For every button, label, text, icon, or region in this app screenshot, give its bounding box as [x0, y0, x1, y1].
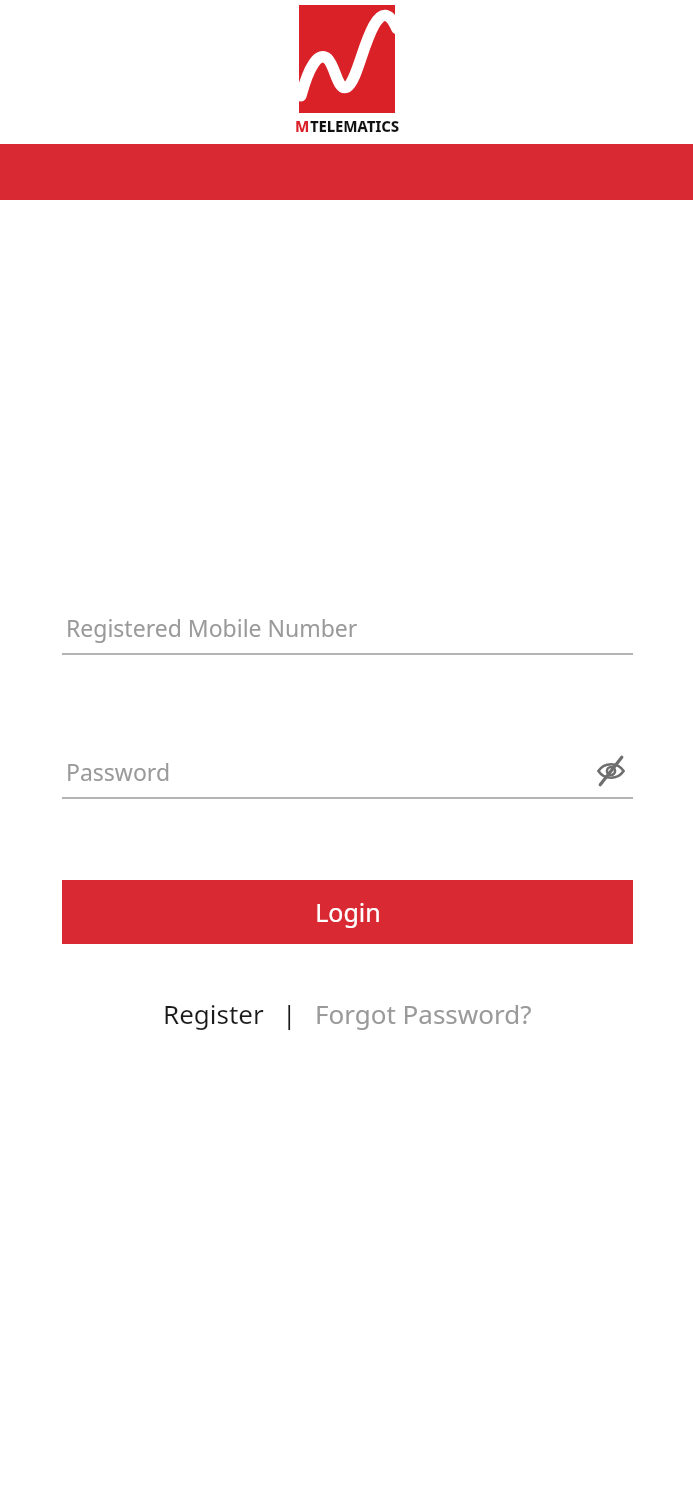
button[interactable]: Registered Mobile Number: [62, 601, 633, 653]
button[interactable]: Password: [62, 745, 633, 797]
staticText: M: [295, 116, 310, 136]
staticText: Password: [66, 756, 171, 787]
staticText: Forgot Password?: [315, 996, 532, 1031]
staticText: Registered Mobile Number: [66, 612, 358, 643]
staticText: Register: [163, 996, 264, 1031]
staticText: Login: [315, 895, 381, 929]
button[interactable]: Register: [157, 992, 270, 1035]
staticText: TELEMATICS: [310, 116, 399, 136]
button[interactable]: Login: [62, 880, 633, 944]
button[interactable]: Forgot Password?: [309, 992, 538, 1035]
staticText: |: [282, 996, 297, 1031]
button[interactable]: Show password: [589, 749, 633, 793]
